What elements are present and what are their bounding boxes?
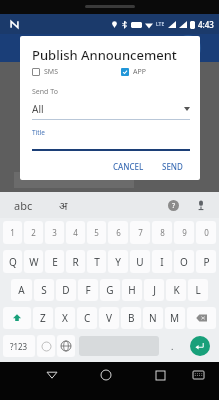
button[interactable]: L (188, 279, 208, 301)
staticText: APP (133, 67, 146, 77)
button[interactable]: K (166, 279, 186, 301)
button[interactable]: 4 (66, 221, 85, 244)
button[interactable]: 3 (45, 221, 64, 244)
button[interactable]: D (56, 279, 76, 301)
staticText: ?123 (10, 341, 28, 352)
staticText: B (128, 311, 135, 325)
staticText: K (173, 283, 180, 297)
button[interactable]: . (163, 335, 181, 357)
button[interactable]: I (152, 250, 172, 273)
staticText: E (52, 255, 58, 269)
staticText: CANCEL (113, 161, 144, 172)
button[interactable]: CANCEL (106, 157, 151, 176)
staticText: A (18, 283, 25, 297)
staticText: abc (14, 198, 33, 213)
button[interactable]: U (130, 250, 150, 273)
button[interactable]: H (122, 279, 142, 301)
staticText: LTE (156, 21, 165, 28)
staticText: H (128, 283, 136, 297)
staticText: X (62, 311, 68, 325)
button[interactable]: 1 (3, 221, 22, 244)
button[interactable]: abc (12, 198, 35, 213)
button[interactable]: 5 (87, 221, 106, 244)
staticText: ? (172, 201, 176, 211)
staticText: U (136, 255, 144, 269)
button[interactable]: E (45, 250, 64, 273)
staticText: C (84, 311, 91, 325)
button[interactable]: SMS (32, 66, 59, 78)
staticText: J (153, 283, 156, 297)
button[interactable]: G (100, 279, 120, 301)
staticText: 8 (160, 227, 165, 238)
button[interactable]: अ (57, 198, 70, 213)
staticText: M (170, 311, 180, 325)
button[interactable]: F (78, 279, 98, 301)
staticText: Publish Announcement (32, 46, 177, 64)
staticText: P (203, 255, 210, 269)
button[interactable]: S (34, 279, 54, 301)
staticText: G (106, 283, 114, 297)
staticText: I (160, 255, 164, 269)
button[interactable]: 0 (196, 221, 216, 244)
button[interactable]: 2 (24, 221, 43, 244)
staticText: 3 (52, 227, 57, 238)
button[interactable]: P (196, 250, 216, 273)
button[interactable]: Switch keyboard (188, 365, 208, 385)
button[interactable]: ?123 (3, 335, 35, 357)
button[interactable]: Backspace (187, 307, 216, 329)
button[interactable]: SEND (155, 157, 190, 176)
staticText: 9 (182, 227, 187, 238)
button[interactable]: Voice input (195, 199, 207, 211)
button[interactable]: W (24, 250, 43, 273)
staticText: 0 (204, 227, 209, 238)
staticText: SEND (162, 161, 183, 172)
button[interactable]: Help (168, 200, 179, 211)
button[interactable]: T (87, 250, 106, 273)
staticText: Y (115, 255, 121, 269)
button[interactable]: Z (33, 307, 53, 329)
button[interactable]: Recent apps (149, 364, 171, 386)
staticText: All (32, 102, 184, 116)
button[interactable]: M (165, 307, 185, 329)
staticText: Send To (32, 87, 58, 97)
staticText: F (85, 283, 91, 297)
staticText: 7 (138, 227, 143, 238)
staticText: R (72, 255, 79, 269)
button[interactable]: APP (121, 66, 146, 78)
button[interactable]: Home (95, 364, 117, 386)
staticText: N (149, 311, 157, 325)
button[interactable]: Y (108, 250, 128, 273)
button[interactable]: O (174, 250, 194, 273)
staticText: अ (59, 198, 68, 213)
button[interactable]: All (32, 102, 190, 116)
button[interactable]: R (66, 250, 85, 273)
button[interactable]: Emoji (37, 335, 55, 357)
button[interactable]: 7 (130, 221, 150, 244)
button[interactable]: N (143, 307, 163, 329)
staticText: D (62, 283, 70, 297)
button[interactable]: Enter (190, 336, 210, 356)
button[interactable]: B (121, 307, 141, 329)
button[interactable]: V (99, 307, 119, 329)
staticText: L (195, 283, 201, 297)
staticText: 1 (10, 227, 15, 238)
button[interactable]: 6 (108, 221, 128, 244)
button[interactable]: Change language (57, 335, 75, 357)
button[interactable]: 8 (152, 221, 172, 244)
staticText: 4 (73, 227, 78, 238)
button[interactable]: Q (3, 250, 22, 273)
staticText: O (180, 255, 188, 269)
button[interactable]: J (144, 279, 164, 301)
staticText: 4:43 (198, 19, 214, 30)
button[interactable]: A (11, 279, 32, 301)
staticText: 5 (94, 227, 99, 238)
button[interactable]: Back (41, 364, 63, 386)
staticText: 6 (116, 227, 121, 238)
button[interactable]: Shift (3, 307, 31, 329)
button[interactable]: X (55, 307, 75, 329)
button[interactable]: 9 (174, 221, 194, 244)
button[interactable]: C (77, 307, 97, 329)
staticText: . (171, 340, 174, 352)
staticText: V (106, 311, 112, 325)
